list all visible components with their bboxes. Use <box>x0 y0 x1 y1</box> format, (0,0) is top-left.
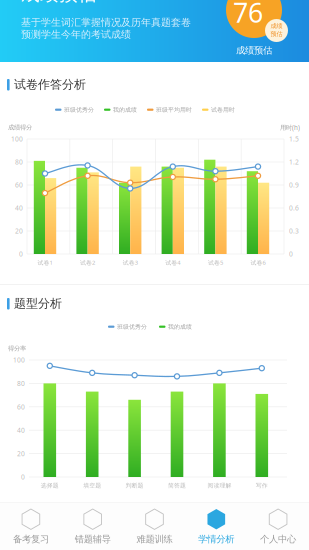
staticText: 写作 <box>256 482 268 489</box>
staticText: 成绩得分 <box>8 124 32 131</box>
staticText: 难题训练 <box>136 533 172 545</box>
staticText: 60 <box>15 180 23 190</box>
staticText: 20 <box>17 449 25 458</box>
staticText: 80 <box>17 379 25 388</box>
staticText: 100 <box>13 355 25 365</box>
staticText: 成绩 <box>270 22 282 30</box>
staticText: 试卷3 <box>123 258 138 266</box>
staticText: 班级优秀分 <box>64 106 94 113</box>
staticText: 0.6 <box>289 203 299 213</box>
staticText: 简答题 <box>168 482 186 489</box>
staticText: 得分率 <box>8 345 26 352</box>
button[interactable]: 学情分析 <box>185 503 247 550</box>
staticText: 0.9 <box>289 180 299 190</box>
button[interactable]: 备考复习 <box>0 503 62 550</box>
staticText: 试卷用时 <box>211 106 235 113</box>
staticText: 40 <box>17 426 25 435</box>
staticText: 阅读理解 <box>207 482 231 489</box>
staticText: 个人中心 <box>260 533 296 545</box>
staticText: 班级优秀分 <box>117 323 147 330</box>
staticText: 0.3 <box>289 226 299 236</box>
staticText: 错题辅导 <box>75 533 111 545</box>
staticText: 判断题 <box>126 482 144 489</box>
staticText: 60 <box>17 402 25 411</box>
staticText: 100 <box>11 134 23 144</box>
staticText: 0 <box>19 249 23 259</box>
staticText: 题型分析 <box>14 296 62 311</box>
staticText: 1.2 <box>289 157 299 167</box>
staticText: 试卷6 <box>250 258 265 266</box>
staticText: 20 <box>15 226 23 236</box>
button[interactable]: 个人中心 <box>247 503 309 550</box>
button[interactable]: 错题辅导 <box>62 503 124 550</box>
button[interactable]: 难题训练 <box>124 503 185 550</box>
staticText: 填空题 <box>83 482 101 489</box>
staticText: 0 <box>21 472 25 482</box>
staticText: 1.5 <box>289 134 299 144</box>
staticText: 我的成绩 <box>113 106 137 113</box>
staticText: 0 <box>289 249 293 259</box>
staticText: 76 <box>233 0 263 31</box>
staticText: 班级平均用时 <box>156 106 192 113</box>
staticText: 试卷5 <box>208 258 223 266</box>
staticText: 试卷1 <box>37 258 52 266</box>
staticText: 预估 <box>270 30 282 38</box>
staticText: 基于学生词汇掌握情况及历年真题套卷 <box>21 16 191 29</box>
staticText: 80 <box>15 157 23 167</box>
staticText: 选择题 <box>41 482 59 489</box>
staticText: 40 <box>15 203 23 213</box>
staticText: 试卷2 <box>80 258 95 266</box>
staticText: 预测学生今年的考试成绩 <box>21 28 131 41</box>
staticText: 用时(h) <box>280 123 300 132</box>
staticText: 学情分析 <box>198 533 234 545</box>
staticText: 试卷4 <box>165 258 180 266</box>
staticText: 备考复习 <box>13 533 49 545</box>
staticText: 我的成绩 <box>168 323 192 330</box>
staticText: 试卷作答分析 <box>14 77 86 92</box>
staticText: 成绩预估 <box>236 45 272 56</box>
staticText: 成绩预估 <box>21 0 97 6</box>
